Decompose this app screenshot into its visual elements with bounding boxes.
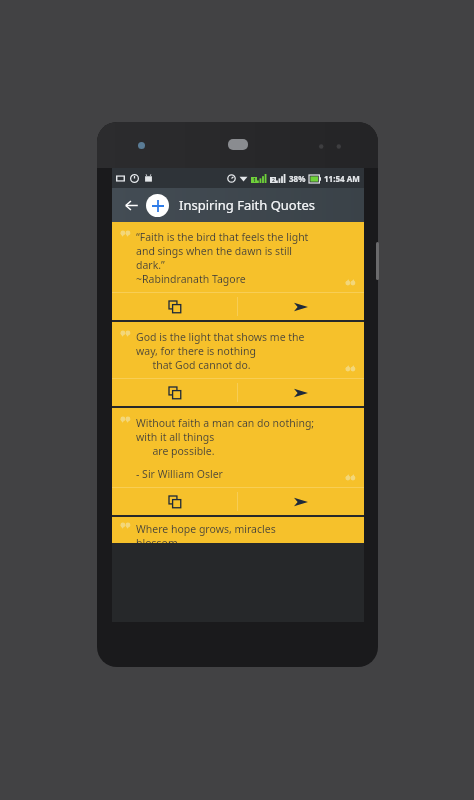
staticText: way, for there is nothing <box>136 344 256 358</box>
button[interactable]: Share <box>238 379 364 406</box>
button[interactable]: God is the light that shows me the <box>112 322 364 406</box>
staticText: Where hope grows, miracles <box>136 522 276 536</box>
staticText: Without faith a man can do nothing; <box>136 416 315 430</box>
staticText: that God cannot do. <box>136 358 251 372</box>
staticText: - Sir William Osler <box>136 467 223 481</box>
staticText: 2 <box>272 177 275 183</box>
button[interactable]: Share <box>238 488 364 515</box>
staticText: Inspiring Faith Quotes <box>179 196 315 214</box>
staticText: are possible. <box>136 444 215 458</box>
staticText: and sings when the dawn is still <box>136 244 293 258</box>
staticText: ~Rabindranath Tagore <box>136 272 246 286</box>
button[interactable]: Back <box>118 192 144 218</box>
button[interactable]: Add quote <box>146 194 169 217</box>
button[interactable]: Where hope grows, miracles <box>112 517 364 543</box>
button[interactable]: Without faith a man can do nothing; <box>112 408 364 515</box>
staticText: 1 <box>253 177 256 183</box>
staticText: God is the light that shows me the <box>136 330 305 344</box>
staticText: dark.” <box>136 258 165 272</box>
button[interactable]: Copy <box>112 293 237 320</box>
staticText: blossom. <box>136 536 181 543</box>
button[interactable]: Copy <box>112 488 237 515</box>
button[interactable]: “Faith is the bird that feels the light <box>112 222 364 320</box>
staticText: “Faith is the bird that feels the light <box>136 230 309 244</box>
staticText: 11:54 AM <box>324 173 360 184</box>
staticText: 38% <box>289 173 306 184</box>
button[interactable]: Share <box>238 293 364 320</box>
button[interactable]: Copy <box>112 379 237 406</box>
staticText: with it all things <box>136 430 215 444</box>
